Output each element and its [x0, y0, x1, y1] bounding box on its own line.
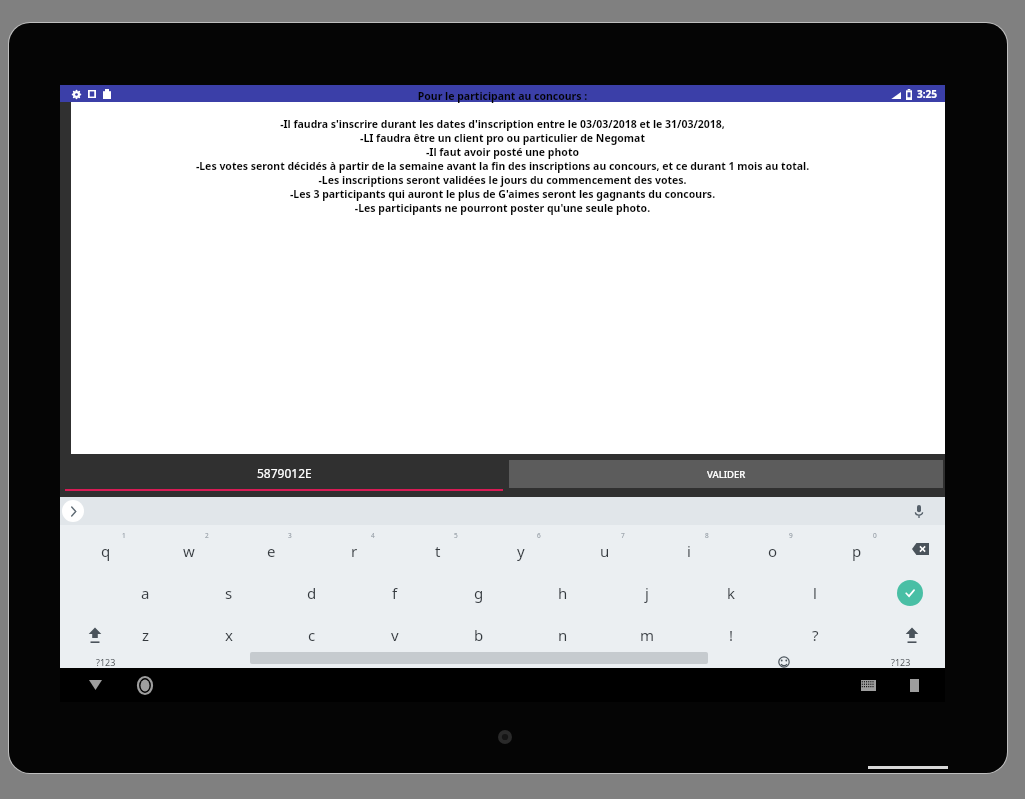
staticText: a [141, 583, 150, 603]
button[interactable]: VALIDER [509, 460, 943, 488]
staticText: j [645, 583, 649, 603]
button[interactable]: u [563, 525, 647, 572]
staticText: v [391, 625, 399, 645]
staticText: k [727, 583, 736, 603]
button[interactable]: m [605, 614, 689, 656]
button[interactable]: c [270, 614, 353, 656]
button[interactable]: b [437, 614, 521, 656]
button[interactable]: Shift [80, 618, 110, 652]
staticText: f [392, 583, 398, 603]
button[interactable]: v [353, 614, 437, 656]
staticText: ?123 [891, 656, 911, 668]
button[interactable]: j [605, 572, 689, 614]
button[interactable]: d [270, 572, 353, 614]
staticText: g [474, 583, 484, 603]
button[interactable]: a [104, 572, 187, 614]
button[interactable]: ? [773, 614, 857, 656]
button[interactable]: 5879012E [60, 454, 508, 497]
staticText: ?123 [96, 656, 116, 668]
staticText: 1 [122, 531, 126, 540]
staticText: 3 [288, 531, 292, 540]
staticText: VALIDER [707, 468, 746, 481]
staticText: -Il faut avoir posté une photo [60, 145, 945, 159]
button[interactable]: x [187, 614, 270, 656]
button[interactable]: Expand suggestions [62, 500, 84, 522]
staticText: 5 [454, 531, 458, 540]
staticText: 2 [205, 531, 209, 540]
staticText: q [101, 541, 111, 561]
staticText: 8 [705, 531, 709, 540]
staticText: x [225, 625, 233, 645]
staticText: p [852, 541, 862, 561]
staticText: ? [812, 625, 819, 645]
staticText: 7 [621, 531, 625, 540]
staticText: l [813, 583, 817, 603]
staticText: 3:25 [917, 87, 937, 101]
button[interactable]: ?123 [881, 656, 921, 668]
button[interactable]: Home [128, 668, 162, 702]
button[interactable]: Voice input [909, 501, 929, 521]
staticText: ! [729, 625, 734, 645]
button[interactable]: ?123 [86, 656, 126, 668]
button[interactable]: r [313, 525, 396, 572]
button[interactable]: t [396, 525, 479, 572]
button[interactable]: Back [78, 668, 112, 702]
button[interactable]: q [64, 525, 147, 572]
button[interactable]: w [147, 525, 230, 572]
staticText: -Il faudra s'inscrire durant les dates d… [60, 117, 945, 131]
staticText: u [600, 541, 610, 561]
staticText: -Les participants ne pourront poster qu'… [60, 201, 945, 215]
staticText: t [435, 541, 441, 561]
staticText: e [267, 541, 276, 561]
staticText: d [307, 583, 317, 603]
button[interactable]: Emoji [769, 656, 799, 668]
staticText: 0 [873, 531, 877, 540]
staticText: Pour le participant au concours : [60, 89, 945, 103]
button[interactable]: Hide keyboard [853, 670, 883, 700]
staticText: z [142, 625, 150, 645]
staticText: b [474, 625, 484, 645]
staticText: -Les 3 participants qui auront le plus d… [60, 187, 945, 201]
staticText: -Les inscriptions seront validées le jou… [60, 173, 945, 187]
button[interactable]: z [104, 614, 187, 656]
staticText: m [640, 625, 655, 645]
button[interactable]: h [521, 572, 605, 614]
button[interactable]: Recents [899, 670, 929, 700]
button[interactable]: l [773, 572, 857, 614]
staticText: 6 [537, 531, 541, 540]
button[interactable]: Shift [897, 618, 927, 652]
button[interactable]: e [230, 525, 313, 572]
staticText: w [183, 541, 195, 561]
staticText: h [558, 583, 568, 603]
button[interactable]: k [689, 572, 773, 614]
button[interactable]: p [815, 525, 899, 572]
button[interactable]: Backspace [907, 534, 933, 564]
staticText: y [517, 541, 525, 561]
button[interactable]: g [437, 572, 521, 614]
button[interactable]: i [647, 525, 731, 572]
staticText: r [351, 541, 358, 561]
staticText: c [308, 625, 316, 645]
staticText: i [687, 541, 691, 561]
staticText: s [225, 583, 233, 603]
button[interactable]: n [521, 614, 605, 656]
button[interactable]: y [479, 525, 563, 572]
button[interactable]: f [353, 572, 437, 614]
button[interactable]: s [187, 572, 270, 614]
staticText: 4 [371, 531, 375, 540]
staticText [60, 103, 945, 117]
staticText: n [558, 625, 568, 645]
staticText: o [768, 541, 778, 561]
staticText: 5879012E [257, 465, 312, 481]
button[interactable]: ! [689, 614, 773, 656]
button[interactable]: Enter [897, 580, 923, 606]
staticText: -Les votes seront décidés à partir de la… [60, 159, 945, 173]
staticText: 9 [789, 531, 793, 540]
button[interactable]: o [731, 525, 815, 572]
staticText: -LI faudra être un client pro ou particu… [60, 131, 945, 145]
